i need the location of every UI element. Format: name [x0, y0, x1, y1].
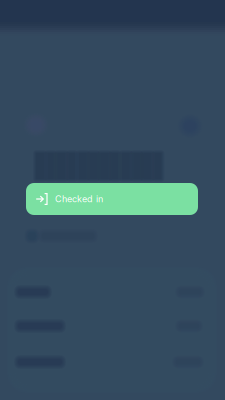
button[interactable]: Checked in: [26, 183, 198, 215]
staticText: Checked in: [55, 193, 103, 204]
